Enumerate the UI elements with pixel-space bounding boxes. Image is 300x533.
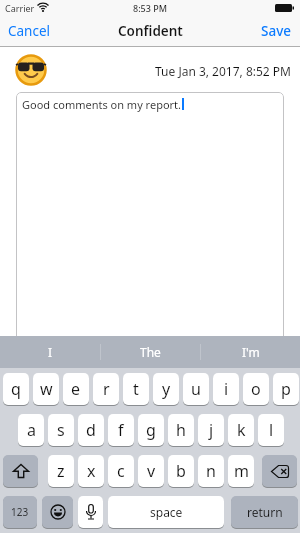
staticText: m (234, 460, 249, 482)
staticText: u (191, 378, 201, 400)
button[interactable]: d (78, 414, 104, 446)
staticText: Confident (118, 22, 183, 40)
button[interactable]: i (213, 373, 239, 405)
button[interactable] (3, 455, 38, 487)
button[interactable]: o (243, 373, 269, 405)
staticText: 123 (11, 505, 29, 519)
button[interactable]: f (108, 414, 134, 446)
staticText: space (150, 504, 183, 520)
button[interactable]: m (228, 455, 254, 487)
button[interactable] (78, 496, 103, 528)
button[interactable]: u (183, 373, 209, 405)
button[interactable]: I (0, 336, 100, 368)
button[interactable] (42, 496, 73, 528)
staticText: z (57, 460, 65, 482)
staticText: t (133, 378, 139, 400)
staticText: Cancel (8, 22, 51, 40)
staticText: Good comments on my report. (22, 97, 182, 112)
staticText: h (176, 419, 186, 441)
staticText: b (176, 460, 186, 482)
staticText: f (118, 419, 124, 441)
button[interactable]: y (153, 373, 179, 405)
button[interactable]: space (108, 496, 224, 528)
staticText: c (117, 460, 125, 482)
staticText: I'm (242, 344, 260, 360)
button[interactable]: 123 (3, 496, 37, 528)
staticText: i (224, 378, 229, 400)
button[interactable]: p (273, 373, 299, 405)
button[interactable]: a (18, 414, 44, 446)
button[interactable]: h (168, 414, 194, 446)
button[interactable]: r (93, 373, 119, 405)
button[interactable]: z (48, 455, 74, 487)
button[interactable]: Cancel (8, 16, 51, 46)
staticText: d (86, 419, 96, 441)
staticText: Tue Jan 3, 2017, 8:52 PM (155, 63, 291, 79)
staticText: y (162, 378, 171, 400)
staticText: n (206, 460, 216, 482)
staticText: o (251, 378, 261, 400)
staticText: I (48, 344, 53, 360)
staticText: l (269, 419, 274, 441)
button[interactable]: The (101, 336, 200, 368)
staticText: v (147, 460, 156, 482)
button[interactable]: k (228, 414, 254, 446)
staticText: Save (261, 22, 292, 40)
staticText: q (11, 378, 21, 400)
button[interactable]: x (78, 455, 104, 487)
staticText: The (140, 344, 161, 360)
button[interactable]: g (138, 414, 164, 446)
button[interactable] (262, 455, 297, 487)
staticText: 8:53 PM (133, 2, 167, 14)
button[interactable]: Save (261, 16, 292, 46)
staticText: j (209, 419, 214, 441)
staticText: return (247, 504, 283, 520)
button[interactable]: e (63, 373, 89, 405)
staticText: g (146, 419, 156, 441)
staticText: s (57, 419, 65, 441)
button[interactable]: j (198, 414, 224, 446)
button[interactable]: n (198, 455, 224, 487)
button[interactable]: t (123, 373, 149, 405)
staticText: p (281, 378, 291, 400)
staticText: x (87, 460, 96, 482)
button[interactable]: w (33, 373, 59, 405)
staticText: w (40, 378, 53, 400)
button[interactable]: s (48, 414, 74, 446)
button[interactable]: b (168, 455, 194, 487)
button[interactable]: l (258, 414, 284, 446)
staticText: Carrier (5, 2, 35, 14)
button[interactable]: I'm (201, 336, 300, 368)
staticText: r (103, 378, 110, 400)
button[interactable]: c (108, 455, 134, 487)
staticText: k (237, 419, 246, 441)
button[interactable]: q (3, 373, 29, 405)
button[interactable]: return (231, 496, 298, 528)
button[interactable] (15, 54, 47, 86)
staticText: a (27, 419, 36, 441)
staticText: e (71, 378, 81, 400)
button[interactable]: v (138, 455, 164, 487)
button[interactable]: Good comments on my report. (16, 92, 284, 342)
